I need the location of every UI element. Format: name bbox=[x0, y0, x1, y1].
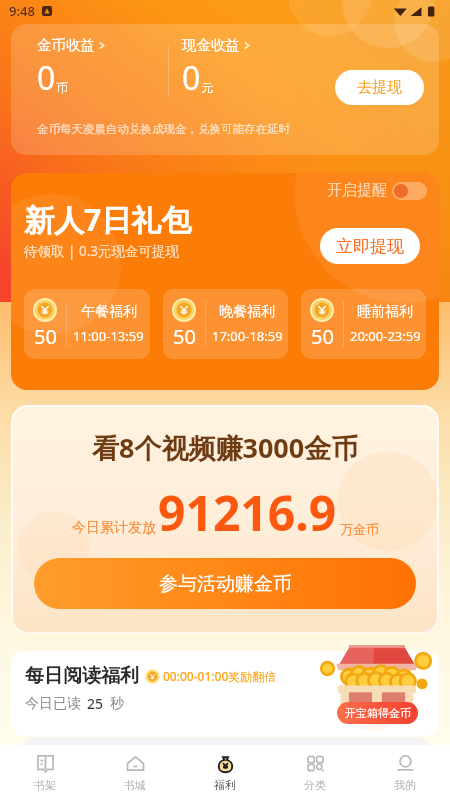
staticText: 福利 bbox=[214, 778, 236, 792]
staticText: 新人7日礼包 bbox=[24, 199, 192, 240]
button[interactable]: 分类 bbox=[270, 745, 360, 800]
staticText: 分类 bbox=[304, 778, 326, 792]
staticText: 00:00-01:00奖励翻倍 bbox=[163, 668, 277, 684]
staticText: 元 bbox=[201, 80, 213, 95]
button[interactable]: 开启提醒 bbox=[325, 179, 429, 202]
staticText: 91216.9 bbox=[158, 480, 337, 545]
button[interactable]: 福利 bbox=[180, 745, 270, 800]
staticText: 11:00-13:59 bbox=[73, 327, 144, 345]
staticText: 50 bbox=[34, 323, 57, 350]
staticText: 0 bbox=[182, 56, 201, 100]
staticText: 今日已读 bbox=[25, 695, 81, 713]
staticText: 9:48 bbox=[9, 2, 35, 20]
staticText: 开宝箱得金币 bbox=[345, 706, 411, 720]
button[interactable]: 50 bbox=[24, 289, 150, 359]
button[interactable]: 去提现 bbox=[335, 70, 424, 105]
staticText: 每日阅读福利 bbox=[25, 664, 139, 688]
button[interactable]: 我的 bbox=[360, 745, 450, 800]
staticText: 去提现 bbox=[357, 78, 402, 97]
staticText: 睡前福利 bbox=[357, 303, 413, 321]
staticText: 参与活动赚金币 bbox=[159, 572, 292, 596]
staticText: 0 bbox=[37, 56, 56, 100]
staticText: 金币每天凌晨自动兑换成现金，兑换可能存在延时 bbox=[37, 122, 290, 136]
staticText: 我的 bbox=[394, 778, 416, 792]
button[interactable]: 50 bbox=[163, 289, 288, 359]
staticText: 20:00-23:59 bbox=[350, 327, 421, 345]
button[interactable]: 书架 bbox=[0, 745, 90, 800]
button[interactable]: 书城 bbox=[90, 745, 180, 800]
staticText: 秒 bbox=[110, 695, 124, 713]
staticText: 17:00-18:59 bbox=[212, 327, 283, 345]
staticText: 待领取 | 0.3元现金可提现 bbox=[24, 242, 180, 260]
staticText: 25 bbox=[87, 694, 104, 713]
staticText: 币 bbox=[56, 80, 68, 95]
button[interactable]: 每日阅读福利 bbox=[11, 651, 439, 736]
button[interactable]: 金币收益 bbox=[37, 36, 107, 100]
button[interactable]: 开宝箱得金币 bbox=[337, 702, 418, 724]
staticText: 书城 bbox=[124, 778, 146, 792]
staticText: 书架 bbox=[34, 778, 56, 792]
staticText: 看8个视频赚3000金币 bbox=[92, 429, 359, 466]
staticText: 50 bbox=[311, 323, 334, 350]
staticText: 立即提现 bbox=[336, 236, 404, 257]
button[interactable]: 50 bbox=[301, 289, 426, 359]
button[interactable]: 参与活动赚金币 bbox=[34, 558, 416, 609]
staticText: 50 bbox=[173, 323, 196, 350]
staticText: 现金收益 bbox=[182, 36, 240, 54]
staticText: 开启提醒 bbox=[327, 181, 387, 200]
staticText: 万金币 bbox=[340, 521, 379, 537]
staticText: 金币收益 bbox=[37, 36, 95, 54]
staticText: 今日累计发放 bbox=[72, 519, 156, 537]
staticText: 午餐福利 bbox=[81, 303, 137, 321]
button[interactable]: 立即提现 bbox=[320, 228, 420, 264]
button[interactable]: 现金收益 bbox=[182, 36, 252, 100]
staticText: 晚餐福利 bbox=[219, 303, 275, 321]
